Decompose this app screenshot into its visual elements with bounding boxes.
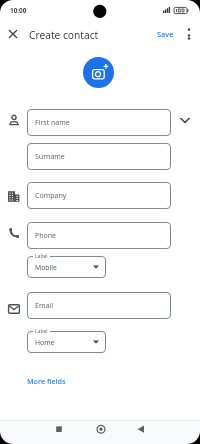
button[interactable]: Surname [27, 143, 171, 170]
staticText: Email [35, 301, 53, 311]
staticText: Mobile [35, 263, 57, 272]
button[interactable]: Email [27, 292, 171, 319]
staticText: First name [35, 118, 70, 128]
button[interactable]: Mobile [27, 256, 106, 278]
button[interactable] [83, 57, 114, 88]
staticText: Create contact [29, 28, 99, 42]
button[interactable]: Save [150, 27, 180, 41]
button[interactable] [177, 112, 193, 128]
button[interactable]: Company [27, 182, 171, 209]
staticText: 10:00 [10, 6, 27, 15]
staticText: Label [35, 253, 48, 260]
button[interactable]: More fields [27, 374, 66, 388]
staticText: Home [35, 338, 55, 347]
button[interactable] [5, 26, 21, 42]
button[interactable]: Phone [27, 222, 171, 249]
staticText: Label [35, 328, 48, 335]
staticText: Save [157, 29, 174, 39]
staticText: Company [35, 191, 67, 201]
button[interactable]: Home [27, 331, 106, 353]
staticText: Phone [35, 231, 57, 241]
button[interactable] [133, 421, 149, 437]
button[interactable]: First name [27, 109, 171, 136]
button[interactable] [51, 421, 67, 437]
staticText: More fields [27, 376, 66, 386]
staticText: Surname [35, 152, 65, 162]
button[interactable] [93, 421, 109, 437]
button[interactable] [183, 27, 195, 41]
